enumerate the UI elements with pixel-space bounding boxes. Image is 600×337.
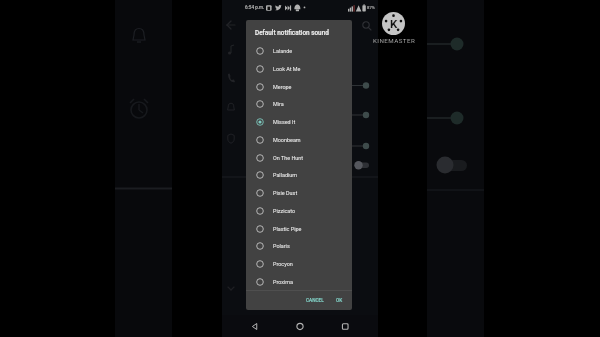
button[interactable]: Proxima <box>246 273 352 291</box>
button[interactable]: Home <box>285 315 315 337</box>
staticText: Lalande <box>273 48 293 54</box>
button[interactable]: Missed It <box>246 113 352 131</box>
staticText: Moonbeam <box>273 137 301 143</box>
staticText: Mira <box>273 101 284 107</box>
staticText: Pixie Dust <box>273 190 298 196</box>
staticText: 6:54 p.m. <box>245 5 265 10</box>
staticText: Missed It <box>273 119 296 125</box>
staticText: Polaris <box>273 243 290 249</box>
staticText: Palladium <box>273 172 298 178</box>
staticText: Proxima <box>273 279 294 285</box>
staticText: Procyon <box>273 261 293 267</box>
button[interactable]: Back <box>239 315 269 337</box>
button[interactable]: Pixie Dust <box>246 184 352 202</box>
staticText: K <box>390 17 398 30</box>
staticText: 87% <box>367 5 375 10</box>
button[interactable]: Look At Me <box>246 60 352 78</box>
staticText: Look At Me <box>273 66 301 72</box>
button[interactable]: CANCEL <box>303 295 327 307</box>
button[interactable]: On The Hunt <box>246 149 352 167</box>
staticText: Plastic Pipe <box>273 226 302 232</box>
button[interactable]: Lalande <box>246 42 352 60</box>
staticText: Merope <box>273 84 292 90</box>
button[interactable]: Merope <box>246 78 352 96</box>
button[interactable]: Recents <box>332 315 362 337</box>
button[interactable]: Moonbeam <box>246 131 352 149</box>
button[interactable]: Procyon <box>246 255 352 273</box>
staticText: KINEMASTER <box>373 37 416 44</box>
button[interactable]: Mira <box>246 95 352 113</box>
button[interactable]: Palladium <box>246 166 352 184</box>
staticText: Pizzicato <box>273 208 296 214</box>
button[interactable]: Polaris <box>246 237 352 255</box>
button[interactable]: Pizzicato <box>246 202 352 220</box>
staticText: CANCEL <box>306 298 324 304</box>
button[interactable]: Plastic Pipe <box>246 220 352 238</box>
staticText: OK <box>336 298 343 304</box>
button[interactable]: OK <box>333 295 346 307</box>
staticText: On The Hunt <box>273 155 304 161</box>
staticText: Default notification sound <box>255 29 329 37</box>
